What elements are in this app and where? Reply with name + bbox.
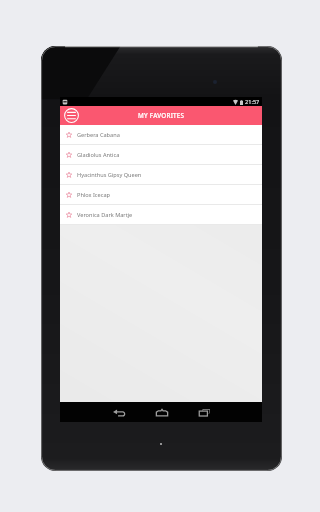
staticText: Gladiolus Antica — [77, 151, 120, 159]
staticText: Phlox Icecap — [77, 191, 110, 199]
staticText: Hyacinthus Gipsy Queen — [77, 171, 142, 179]
button[interactable]: Home — [140, 402, 183, 422]
staticText: Gerbera Cabana — [77, 131, 120, 139]
button[interactable]: Hyacinthus Gipsy Queen — [60, 165, 262, 185]
button[interactable]: Gerbera Cabana — [60, 125, 262, 145]
button[interactable]: Phlox Icecap — [60, 185, 262, 205]
button[interactable]: Recent apps — [183, 402, 226, 422]
staticText: MY FAVORITES — [138, 111, 185, 120]
button[interactable]: Back — [97, 402, 140, 422]
staticText: 21:57 — [245, 98, 260, 106]
button[interactable]: Veronica Dark Martje — [60, 205, 262, 225]
button[interactable]: Open navigation menu — [63, 107, 80, 124]
staticText: Veronica Dark Martje — [77, 211, 133, 219]
button[interactable]: Gladiolus Antica — [60, 145, 262, 165]
